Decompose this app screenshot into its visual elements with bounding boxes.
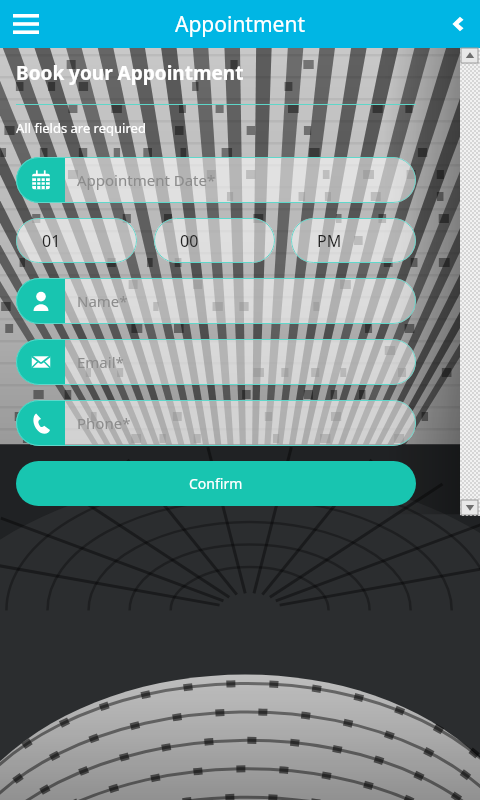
other: Name: [16, 278, 65, 324]
staticText: Appointment: [175, 10, 305, 39]
staticText: Book your Appointment: [16, 60, 244, 86]
other: Phone: [16, 400, 65, 446]
staticText: PM: [317, 230, 342, 252]
staticText: Phone*: [77, 413, 131, 433]
staticText: 00: [180, 230, 199, 252]
staticText: Confirm: [189, 474, 243, 493]
staticText: Name*: [77, 291, 128, 311]
button[interactable]: Name: [16, 278, 416, 324]
button[interactable]: Menu: [0, 0, 52, 48]
other: Email: [16, 339, 65, 385]
button[interactable]: Confirm: [16, 461, 416, 506]
staticText: All fields are required: [16, 119, 146, 137]
other: Pick appointment date: [16, 157, 65, 203]
button[interactable]: Back: [432, 0, 480, 48]
staticText: Appointment Date*: [77, 170, 216, 190]
button[interactable]: Phone: [16, 400, 416, 446]
button[interactable]: 00: [154, 218, 275, 263]
button[interactable]: 01: [16, 218, 137, 263]
button[interactable]: PM: [291, 218, 416, 263]
staticText: 01: [42, 230, 61, 252]
staticText: Email*: [77, 352, 124, 372]
button[interactable]: Pick appointment date: [16, 157, 416, 203]
button[interactable]: Email: [16, 339, 416, 385]
